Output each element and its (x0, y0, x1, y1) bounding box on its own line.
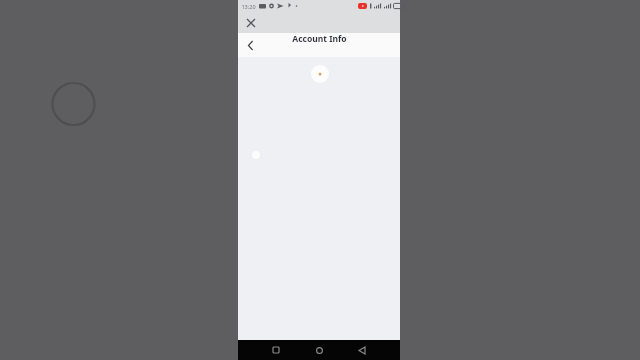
button[interactable]: Profile (311, 65, 329, 83)
button[interactable]: Back (242, 37, 258, 53)
button[interactable]: Recent apps (268, 342, 284, 358)
staticText: Account Info (292, 33, 347, 45)
button[interactable]: Close (244, 16, 258, 30)
button[interactable]: Home (311, 342, 327, 358)
button[interactable]: Back (354, 342, 370, 358)
staticText: 13:20 (241, 3, 256, 10)
